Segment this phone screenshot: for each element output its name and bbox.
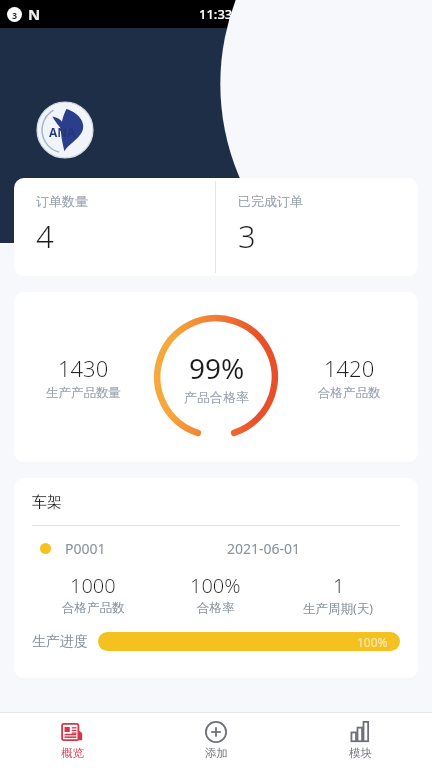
staticText: 产品合格率 bbox=[184, 389, 249, 405]
staticText: 车架 bbox=[32, 493, 62, 512]
staticText: 3 bbox=[238, 215, 256, 257]
staticText: 1000 bbox=[70, 572, 116, 599]
staticText: 模块 bbox=[349, 746, 372, 760]
staticText: 概览 bbox=[61, 746, 84, 760]
staticText: 合格率 bbox=[197, 600, 235, 616]
staticText: 生产周期(天) bbox=[303, 600, 374, 617]
staticText: ANA bbox=[49, 124, 76, 140]
staticText: 合格产品数 bbox=[62, 600, 125, 616]
staticText: 3 bbox=[12, 9, 18, 21]
staticText: 1 bbox=[333, 572, 345, 599]
staticText: 4 bbox=[36, 215, 54, 257]
staticText: 2021-06-01 bbox=[227, 539, 301, 558]
staticText: 订单数量 bbox=[36, 193, 88, 209]
staticText: 100% bbox=[190, 572, 241, 599]
button[interactable]: 车架 bbox=[14, 478, 418, 678]
button[interactable]: 订单数量 bbox=[14, 178, 418, 276]
button[interactable]: 添加 bbox=[144, 713, 288, 768]
staticText: 生产产品数量 bbox=[46, 385, 121, 401]
staticText: P0001 bbox=[65, 539, 106, 558]
button[interactable]: 概览 bbox=[0, 713, 144, 768]
staticText: 1430 bbox=[58, 353, 109, 383]
staticText: 生产进度 bbox=[32, 633, 88, 651]
staticText: 1420 bbox=[324, 353, 375, 383]
staticText: N bbox=[28, 4, 41, 24]
staticText: 99% bbox=[189, 349, 245, 387]
staticText: 添加 bbox=[205, 746, 228, 760]
button[interactable]: 1430 bbox=[14, 292, 418, 462]
staticText: 11:33 bbox=[199, 5, 233, 23]
staticText: 合格产品数 bbox=[318, 385, 381, 401]
button[interactable]: 模块 bbox=[288, 713, 432, 768]
staticText: 100% bbox=[357, 634, 388, 650]
staticText: 已完成订单 bbox=[238, 193, 303, 209]
